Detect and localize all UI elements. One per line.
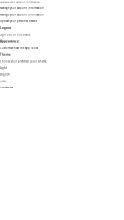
staticText: Manage your account information [0, 0, 40, 3]
staticText: Logout [0, 26, 11, 30]
staticText: Appearance [0, 39, 19, 43]
staticText: Choose your preferred color scheme [0, 60, 46, 63]
staticText: Customize how the app looks [0, 46, 38, 50]
staticText: Theme [0, 53, 11, 57]
staticText: Light [0, 66, 7, 70]
staticText: Notifications [0, 85, 13, 89]
staticText: English [0, 73, 10, 76]
staticText: Manage your account information [0, 13, 44, 16]
staticText: Sign out of this device [0, 33, 30, 36]
staticText: Manage your account information [0, 6, 44, 10]
staticText: Home [0, 79, 6, 82]
staticText: Update your personal details [0, 19, 37, 23]
